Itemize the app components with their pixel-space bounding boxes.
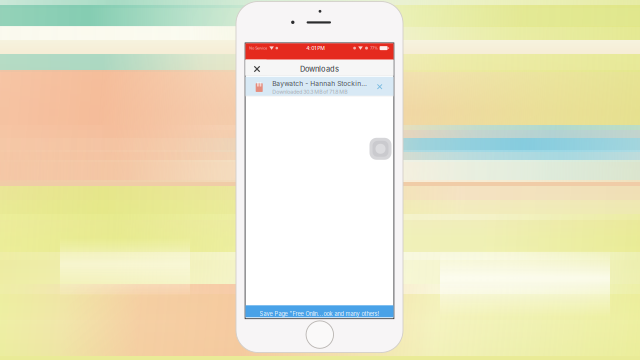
button[interactable]: Save Page "Free Onlin...ook and many oth… [245, 309, 393, 321]
staticText: No Service [249, 46, 267, 50]
staticText: Downloaded 30.3 MB of 71.8 MB [272, 89, 347, 95]
button[interactable]: AssistiveTouch [369, 138, 391, 160]
staticText: Baywatch - Hannah Stocking, L... [272, 80, 367, 88]
staticText: Save Page "Free Onlin...ook and many oth… [259, 310, 379, 317]
button[interactable]: Baywatch - Hannah Stocking, L... [245, 77, 393, 96]
staticText: 4:01 PM [306, 45, 325, 51]
staticText: Downloads [300, 64, 339, 73]
staticText: 77% [370, 46, 378, 50]
button[interactable]: Close [245, 60, 266, 75]
